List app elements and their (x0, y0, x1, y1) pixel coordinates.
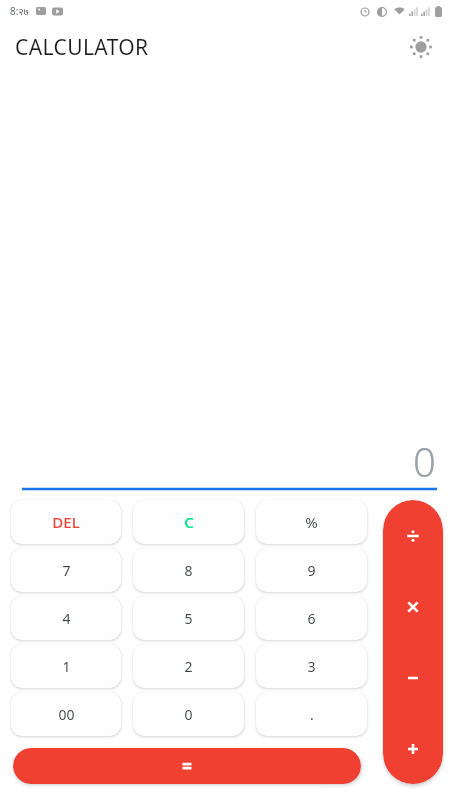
button[interactable]: . (256, 692, 367, 736)
button[interactable]: Plus (383, 713, 443, 784)
button[interactable]: 2 (133, 644, 244, 688)
staticText: . (310, 705, 314, 724)
button[interactable]: Minus (383, 642, 443, 713)
button[interactable]: 3 (256, 644, 367, 688)
staticText: DEL (52, 512, 80, 532)
button[interactable]: 00 (11, 692, 121, 736)
staticText: 8 (184, 561, 193, 580)
button[interactable]: 4 (11, 596, 121, 640)
staticText: 1 (62, 657, 71, 676)
staticText: 5 (184, 609, 193, 628)
button[interactable]: % (256, 500, 367, 544)
button[interactable]: C (133, 500, 244, 544)
button[interactable]: 5 (133, 596, 244, 640)
staticText: 00 (58, 705, 75, 724)
button[interactable]: 0 (133, 692, 244, 736)
staticText: 0 (413, 434, 436, 488)
button[interactable]: 9 (256, 548, 367, 592)
button[interactable] (13, 748, 361, 784)
staticText: CALCULATOR (15, 33, 149, 62)
button[interactable]: Toggle theme (404, 30, 438, 64)
staticText: 3 (307, 657, 316, 676)
button[interactable]: 1 (11, 644, 121, 688)
button[interactable]: Multiply (383, 571, 443, 642)
staticText: 0 (184, 705, 193, 724)
staticText: C (184, 512, 194, 532)
staticText: 6 (307, 609, 316, 628)
button[interactable]: 8 (133, 548, 244, 592)
staticText: 4 (62, 609, 71, 628)
staticText: 8:२७ (10, 4, 29, 18)
staticText: 2 (184, 657, 193, 676)
button[interactable]: 6 (256, 596, 367, 640)
staticText: 7 (62, 561, 71, 580)
staticText: % (305, 512, 318, 532)
button[interactable]: DEL (11, 500, 121, 544)
button[interactable]: 7 (11, 548, 121, 592)
button[interactable]: Divide (383, 500, 443, 571)
staticText: 9 (307, 561, 316, 580)
